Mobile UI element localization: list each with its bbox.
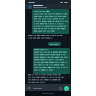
button[interactable] [33, 48, 70, 74]
button[interactable]: Camera [59, 87, 62, 90]
button[interactable] [48, 42, 61, 46]
button[interactable]: Attach [27, 86, 31, 90]
button[interactable]: Send [64, 86, 69, 91]
button[interactable] [32, 9, 69, 34]
button[interactable] [25, 4, 71, 9]
